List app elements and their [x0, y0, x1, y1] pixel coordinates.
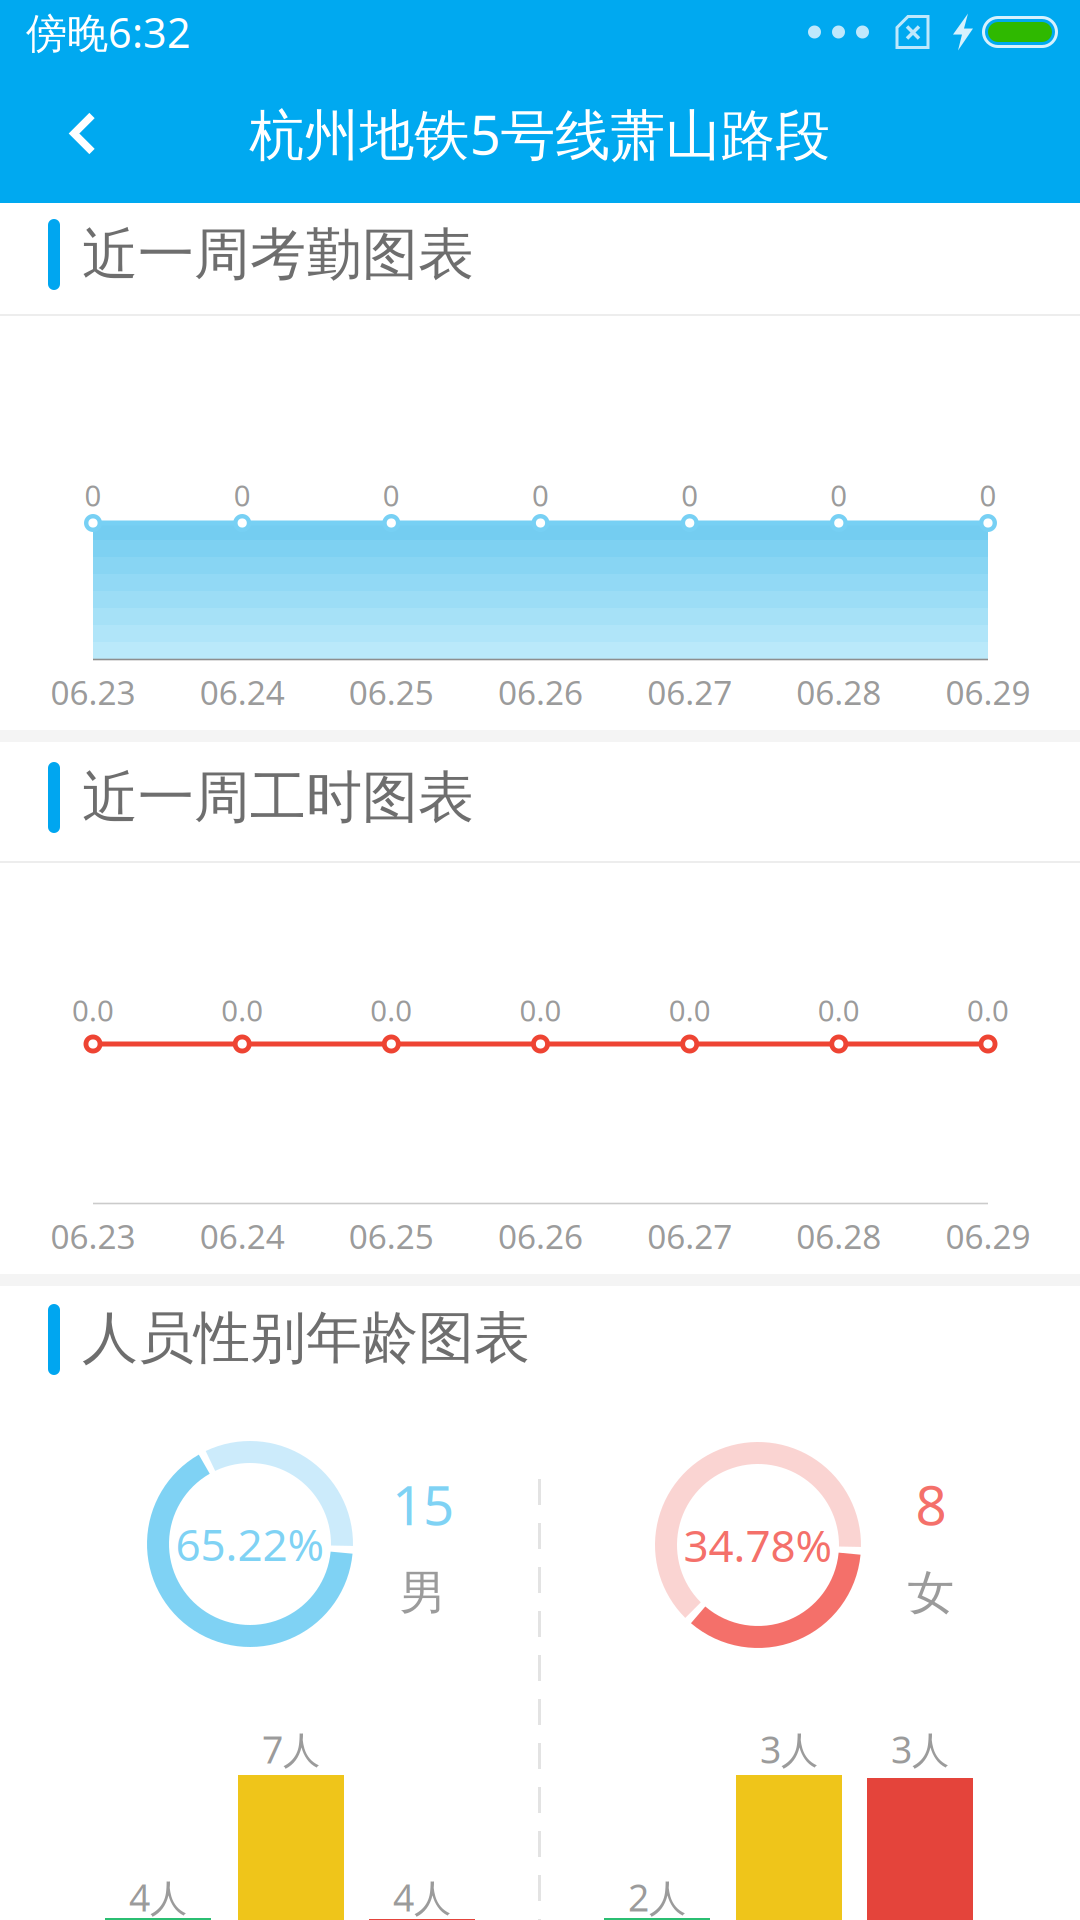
staticText: 3人 — [891, 1724, 949, 1774]
staticText: 女 — [907, 1564, 954, 1622]
staticText: 06.25 — [349, 670, 434, 714]
staticText: 06.25 — [349, 1214, 434, 1258]
staticText: 0 — [681, 475, 698, 514]
button[interactable]: 返回 — [0, 100, 150, 166]
staticText: 男 — [399, 1564, 446, 1622]
staticText: 06.28 — [796, 1214, 881, 1258]
staticText: 0 — [383, 475, 400, 514]
staticText: 3人 — [760, 1724, 818, 1774]
staticText: 0.0 — [669, 990, 711, 1029]
staticText: 06.23 — [50, 1214, 135, 1258]
staticText: 0.0 — [221, 990, 263, 1029]
staticText: 0 — [830, 475, 847, 514]
staticText: 7人 — [262, 1724, 320, 1774]
staticText: 06.27 — [647, 670, 732, 714]
staticText: 06.29 — [945, 1214, 1030, 1258]
staticText: 0.0 — [72, 990, 114, 1029]
staticText: 06.26 — [498, 1214, 583, 1258]
staticText: 0 — [234, 475, 251, 514]
staticText: 06.24 — [200, 1214, 285, 1258]
staticText: 8 — [915, 1468, 946, 1540]
staticText: 34.78% — [683, 1516, 832, 1574]
staticText: 06.27 — [647, 1214, 732, 1258]
staticText: 06.23 — [50, 670, 135, 714]
staticText: 06.28 — [796, 670, 881, 714]
staticText: 0 — [979, 475, 996, 514]
staticText: 4人 — [393, 1872, 451, 1920]
staticText: 杭州地铁5号线萧山路段 — [249, 97, 830, 170]
staticText: 15 — [392, 1468, 454, 1540]
staticText: 2人 — [628, 1872, 686, 1920]
staticText: 06.24 — [200, 670, 285, 714]
staticText: 0 — [532, 475, 549, 514]
staticText: 65.22% — [175, 1515, 324, 1573]
staticText: 06.29 — [945, 670, 1030, 714]
staticText: 傍晚6:32 — [26, 5, 191, 59]
staticText: 0.0 — [519, 990, 561, 1029]
staticText: 人员性别年龄图表 — [82, 1304, 530, 1372]
staticText: 近一周考勤图表 — [82, 220, 474, 289]
staticText: 近一周工时图表 — [82, 763, 474, 832]
staticText: 0 — [84, 475, 101, 514]
staticText: 0.0 — [370, 990, 412, 1029]
staticText: 4人 — [129, 1872, 187, 1920]
staticText: 0.0 — [967, 990, 1009, 1029]
staticText: 06.26 — [498, 670, 583, 714]
staticText: 0.0 — [818, 990, 860, 1029]
